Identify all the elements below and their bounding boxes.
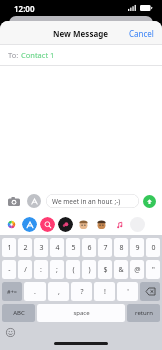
button[interactable]: Music — [112, 217, 127, 232]
staticText: 9 — [135, 243, 140, 253]
button[interactable]: " — [146, 260, 160, 279]
staticText: To: — [8, 50, 21, 60]
button[interactable]: Send — [143, 195, 156, 208]
button[interactable]: , — [48, 282, 69, 301]
button[interactable]: ? — [71, 282, 92, 301]
button[interactable]: Camera — [6, 193, 22, 209]
staticText: We meet in an hour. ;-) — [52, 197, 121, 206]
button[interactable]: $ — [98, 260, 112, 279]
button[interactable]: Digital Touch — [58, 217, 73, 232]
staticText: ? — [80, 287, 84, 297]
button[interactable]: 5 — [66, 238, 80, 257]
button[interactable]: App Store — [27, 194, 41, 208]
staticText: ) — [88, 265, 91, 275]
staticText: , — [58, 287, 60, 297]
button[interactable]: 0 — [146, 238, 160, 257]
button[interactable]: - — [2, 260, 16, 279]
staticText: : — [40, 265, 42, 275]
button[interactable]: 4 — [50, 238, 64, 257]
staticText: #+= — [7, 288, 17, 295]
staticText: . — [34, 287, 36, 297]
button[interactable]: Image search — [40, 217, 55, 232]
button[interactable]: Photos — [4, 217, 19, 232]
staticText: 5 — [71, 243, 76, 253]
button[interactable]: & — [114, 260, 128, 279]
staticText: New Message — [53, 28, 109, 39]
button[interactable]: . — [24, 282, 46, 301]
staticText: ! — [104, 287, 106, 297]
button[interactable]: 2 — [18, 238, 32, 257]
staticText: 2 — [23, 243, 28, 253]
button[interactable]: @ — [130, 260, 144, 279]
button[interactable]: App Store — [22, 217, 37, 232]
button[interactable]: 6 — [82, 238, 96, 257]
staticText: - — [8, 265, 11, 275]
staticText: ; — [56, 265, 58, 275]
button[interactable]: #+= — [2, 282, 22, 301]
button[interactable]: 7 — [98, 238, 112, 257]
staticText: 4 — [55, 243, 60, 253]
button[interactable]: Emoji — [5, 327, 16, 338]
staticText: ( — [72, 265, 75, 275]
button[interactable]: 9 — [130, 238, 144, 257]
button[interactable]: ( — [66, 260, 80, 279]
staticText: 1 — [7, 243, 12, 253]
staticText: ' — [127, 287, 129, 297]
staticText: Contact 1 — [21, 50, 55, 60]
staticText: return — [135, 309, 153, 317]
button[interactable]: ; — [50, 260, 64, 279]
button[interactable]: Memoji 1 — [76, 217, 91, 232]
staticText: 12:00 — [14, 3, 35, 14]
staticText: " — [152, 265, 155, 275]
button[interactable]: ! — [94, 282, 115, 301]
staticText: 0 — [151, 243, 156, 253]
staticText: & — [118, 265, 124, 275]
button[interactable]: return — [127, 304, 160, 322]
staticText: space — [73, 309, 90, 317]
staticText: Cancel — [129, 28, 154, 39]
button[interactable]: ) — [82, 260, 96, 279]
button[interactable]: / — [18, 260, 32, 279]
staticText: 7 — [103, 243, 108, 253]
staticText: 3 — [39, 243, 44, 253]
button[interactable]: : — [34, 260, 48, 279]
button[interactable]: We meet in an hour. ;-) — [46, 194, 139, 208]
button[interactable]: ' — [117, 282, 138, 301]
button[interactable]: Memoji 2 — [94, 217, 109, 232]
staticText: 6 — [87, 243, 92, 253]
button[interactable]: More apps — [130, 217, 145, 232]
staticText: $ — [103, 265, 108, 275]
staticText: 8 — [119, 243, 124, 253]
staticText: ABC — [13, 309, 25, 317]
button[interactable]: 1 — [2, 238, 16, 257]
button[interactable]: To: — [0, 45, 162, 65]
staticText: / — [24, 265, 27, 275]
button[interactable]: Cancel — [121, 24, 162, 43]
staticText: @ — [134, 265, 141, 275]
button[interactable]: 8 — [114, 238, 128, 257]
button[interactable]: ABC — [2, 304, 35, 322]
button[interactable]: Backspace — [140, 282, 160, 301]
button[interactable]: space — [37, 304, 125, 322]
button[interactable]: 3 — [34, 238, 48, 257]
